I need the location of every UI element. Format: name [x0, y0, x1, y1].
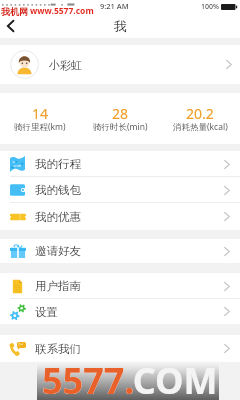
staticText: 9:21 AM [100, 1, 129, 11]
button[interactable]: 邀请好友 [0, 239, 240, 263]
staticText: 14 [32, 104, 49, 123]
staticText: 100% [201, 2, 219, 12]
button[interactable]: 我的钱包 [0, 177, 240, 203]
button[interactable]: Back [0, 14, 22, 38]
button[interactable]: 我的优惠 [0, 203, 240, 230]
button[interactable]: 小彩虹 [0, 45, 240, 84]
staticText: 我机网 [1, 6, 28, 17]
staticText: 设置 [35, 305, 58, 319]
staticText: 我的钱包 [35, 183, 81, 197]
staticText: 用户指南 [35, 279, 81, 293]
button[interactable]: 我的行程 [0, 151, 240, 177]
staticText: 我 [114, 18, 127, 34]
staticText: 邀请好友 [35, 244, 81, 258]
staticText: 小彩虹 [49, 58, 82, 72]
button[interactable]: 用户指南 [0, 273, 240, 299]
staticText: www.5577.com [30, 5, 94, 17]
staticText: 骑行里程(km) [14, 121, 66, 133]
staticText: 联系我们 [35, 342, 81, 356]
button[interactable]: 设置 [0, 299, 240, 324]
button[interactable]: 联系我们 [0, 335, 240, 362]
staticText: 骑行时长(min) [93, 121, 148, 133]
staticText: 5577. [42, 356, 135, 395]
staticText: 消耗热量(kcal) [173, 121, 228, 133]
staticText: 我的行程 [35, 157, 81, 171]
staticText: 28 [112, 104, 129, 123]
staticText: 我的优惠 [35, 210, 81, 224]
staticText: 5577.COM [42, 356, 218, 395]
staticText: 20.2 [186, 104, 214, 123]
